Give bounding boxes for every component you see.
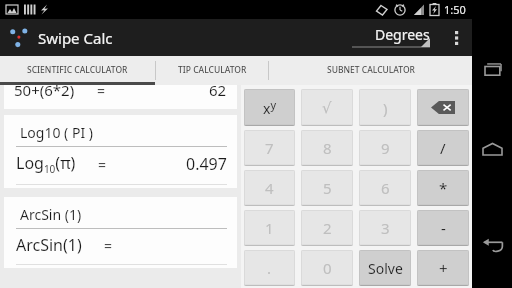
staticText: 5 — [323, 178, 332, 198]
staticText: ArcSin (1) — [20, 205, 82, 224]
button[interactable]: Degrees — [352, 23, 430, 53]
button[interactable]: 6 — [359, 170, 411, 206]
staticText: SUBNET CALCULATOR — [327, 64, 415, 76]
staticText: 9 — [381, 138, 390, 158]
staticText: - — [441, 218, 446, 238]
button[interactable]: / — [417, 130, 469, 166]
button[interactable]: * — [417, 170, 469, 206]
staticText: ) — [383, 98, 388, 118]
staticText: 0.497 — [186, 153, 227, 175]
button[interactable]: 1 — [244, 210, 295, 246]
staticText: ArcSin(1) — [16, 234, 82, 256]
staticText: TIP CALCULATOR — [178, 64, 247, 76]
staticText: . — [267, 258, 272, 278]
staticText: Log10 ( PI ) — [20, 123, 93, 142]
button[interactable]: 4 — [244, 170, 295, 206]
staticText: √ — [322, 99, 332, 116]
button[interactable]: ) — [359, 89, 411, 126]
staticText: 8 — [323, 138, 332, 158]
button[interactable]: 7 — [244, 130, 295, 166]
staticText: 1:50 — [444, 2, 466, 17]
button[interactable]: 0 — [301, 250, 353, 286]
staticText: 1 — [265, 218, 274, 238]
button[interactable]: Back — [475, 228, 509, 262]
staticText: 50+(6*2) — [14, 80, 75, 100]
button[interactable]: Recent apps — [475, 52, 509, 86]
button[interactable]: + — [417, 250, 469, 286]
button[interactable]: 5 — [301, 170, 353, 206]
staticText: Degrees — [375, 25, 430, 44]
staticText: 2 — [323, 218, 332, 238]
button[interactable]: Log10 ( PI ) — [4, 115, 237, 188]
button[interactable]: - — [417, 210, 469, 246]
staticText: 4 — [265, 178, 274, 198]
button[interactable]: 50+(6*2) — [4, 85, 237, 109]
staticText: SCIENTIFIC CALCULATOR — [27, 64, 128, 76]
button[interactable]: More options — [442, 19, 472, 56]
staticText: Log10(π) — [16, 152, 76, 176]
button[interactable]: 9 — [359, 130, 411, 166]
staticText: 3 — [381, 218, 390, 238]
button[interactable]: 2 — [301, 210, 353, 246]
button[interactable]: Solve — [359, 250, 411, 286]
button[interactable]: 3 — [359, 210, 411, 246]
staticText: 6 — [381, 178, 390, 198]
button[interactable]: Home — [475, 132, 509, 166]
button[interactable]: 8 — [301, 130, 353, 166]
button[interactable]: Delete — [417, 89, 469, 126]
button[interactable]: xy — [244, 89, 295, 126]
staticText: 7 — [265, 138, 274, 158]
staticText: = — [97, 81, 106, 100]
staticText: xy — [263, 97, 277, 118]
staticText: = — [104, 236, 113, 255]
button[interactable]: ArcSin (1) — [4, 197, 237, 268]
button[interactable]: SCIENTIFIC CALCULATOR — [0, 56, 155, 85]
staticText: 62 — [209, 80, 227, 100]
staticText: = — [98, 155, 107, 174]
staticText: + — [439, 258, 448, 278]
button[interactable]: √ — [301, 89, 353, 126]
staticText: Swipe Calc — [38, 28, 113, 48]
button[interactable]: . — [244, 250, 295, 286]
staticText: * — [439, 178, 448, 198]
staticText: / — [440, 138, 446, 158]
button[interactable]: SUBNET CALCULATOR — [269, 56, 472, 85]
staticText: 0 — [323, 258, 332, 278]
staticText: Solve — [368, 259, 403, 278]
button[interactable]: TIP CALCULATOR — [156, 56, 268, 85]
